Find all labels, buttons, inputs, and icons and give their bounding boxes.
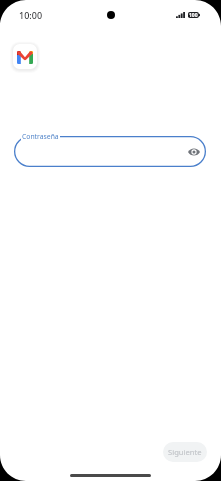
staticText: Siguiente: [168, 447, 202, 457]
staticText: Contraseña: [22, 132, 59, 141]
button[interactable]: Siguiente: [163, 442, 207, 462]
button[interactable]: Mostrar contraseña: [184, 142, 204, 162]
staticText: 10:00: [19, 9, 43, 21]
staticText: 100: [189, 12, 198, 18]
button[interactable]: Mostrar contraseña: [14, 136, 206, 167]
